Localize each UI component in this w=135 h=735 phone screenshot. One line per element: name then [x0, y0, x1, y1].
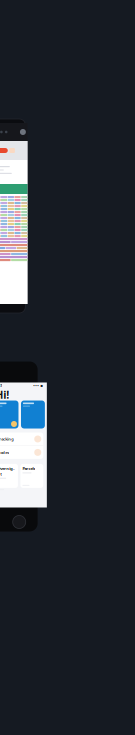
button[interactable]: Card: [21, 400, 45, 428]
staticText: Codes: [0, 450, 9, 455]
staticText: Overnight: [0, 466, 14, 476]
button[interactable]: Tracking: [0, 432, 43, 445]
button[interactable]: Overnight: [0, 464, 18, 488]
button[interactable]: Codes: [0, 446, 43, 459]
button[interactable]: Filter: [9, 148, 15, 153]
staticText: Parcels: [22, 466, 35, 471]
staticText: Tracking: [0, 436, 14, 442]
button[interactable]: Parcels: [20, 464, 43, 488]
staticText: ••• ▪: [33, 383, 43, 388]
button[interactable]: New event: [0, 148, 8, 153]
staticText: Hi!: [0, 387, 9, 402]
button[interactable]: Card: [0, 400, 18, 428]
staticText: 9:41: [0, 383, 2, 388]
